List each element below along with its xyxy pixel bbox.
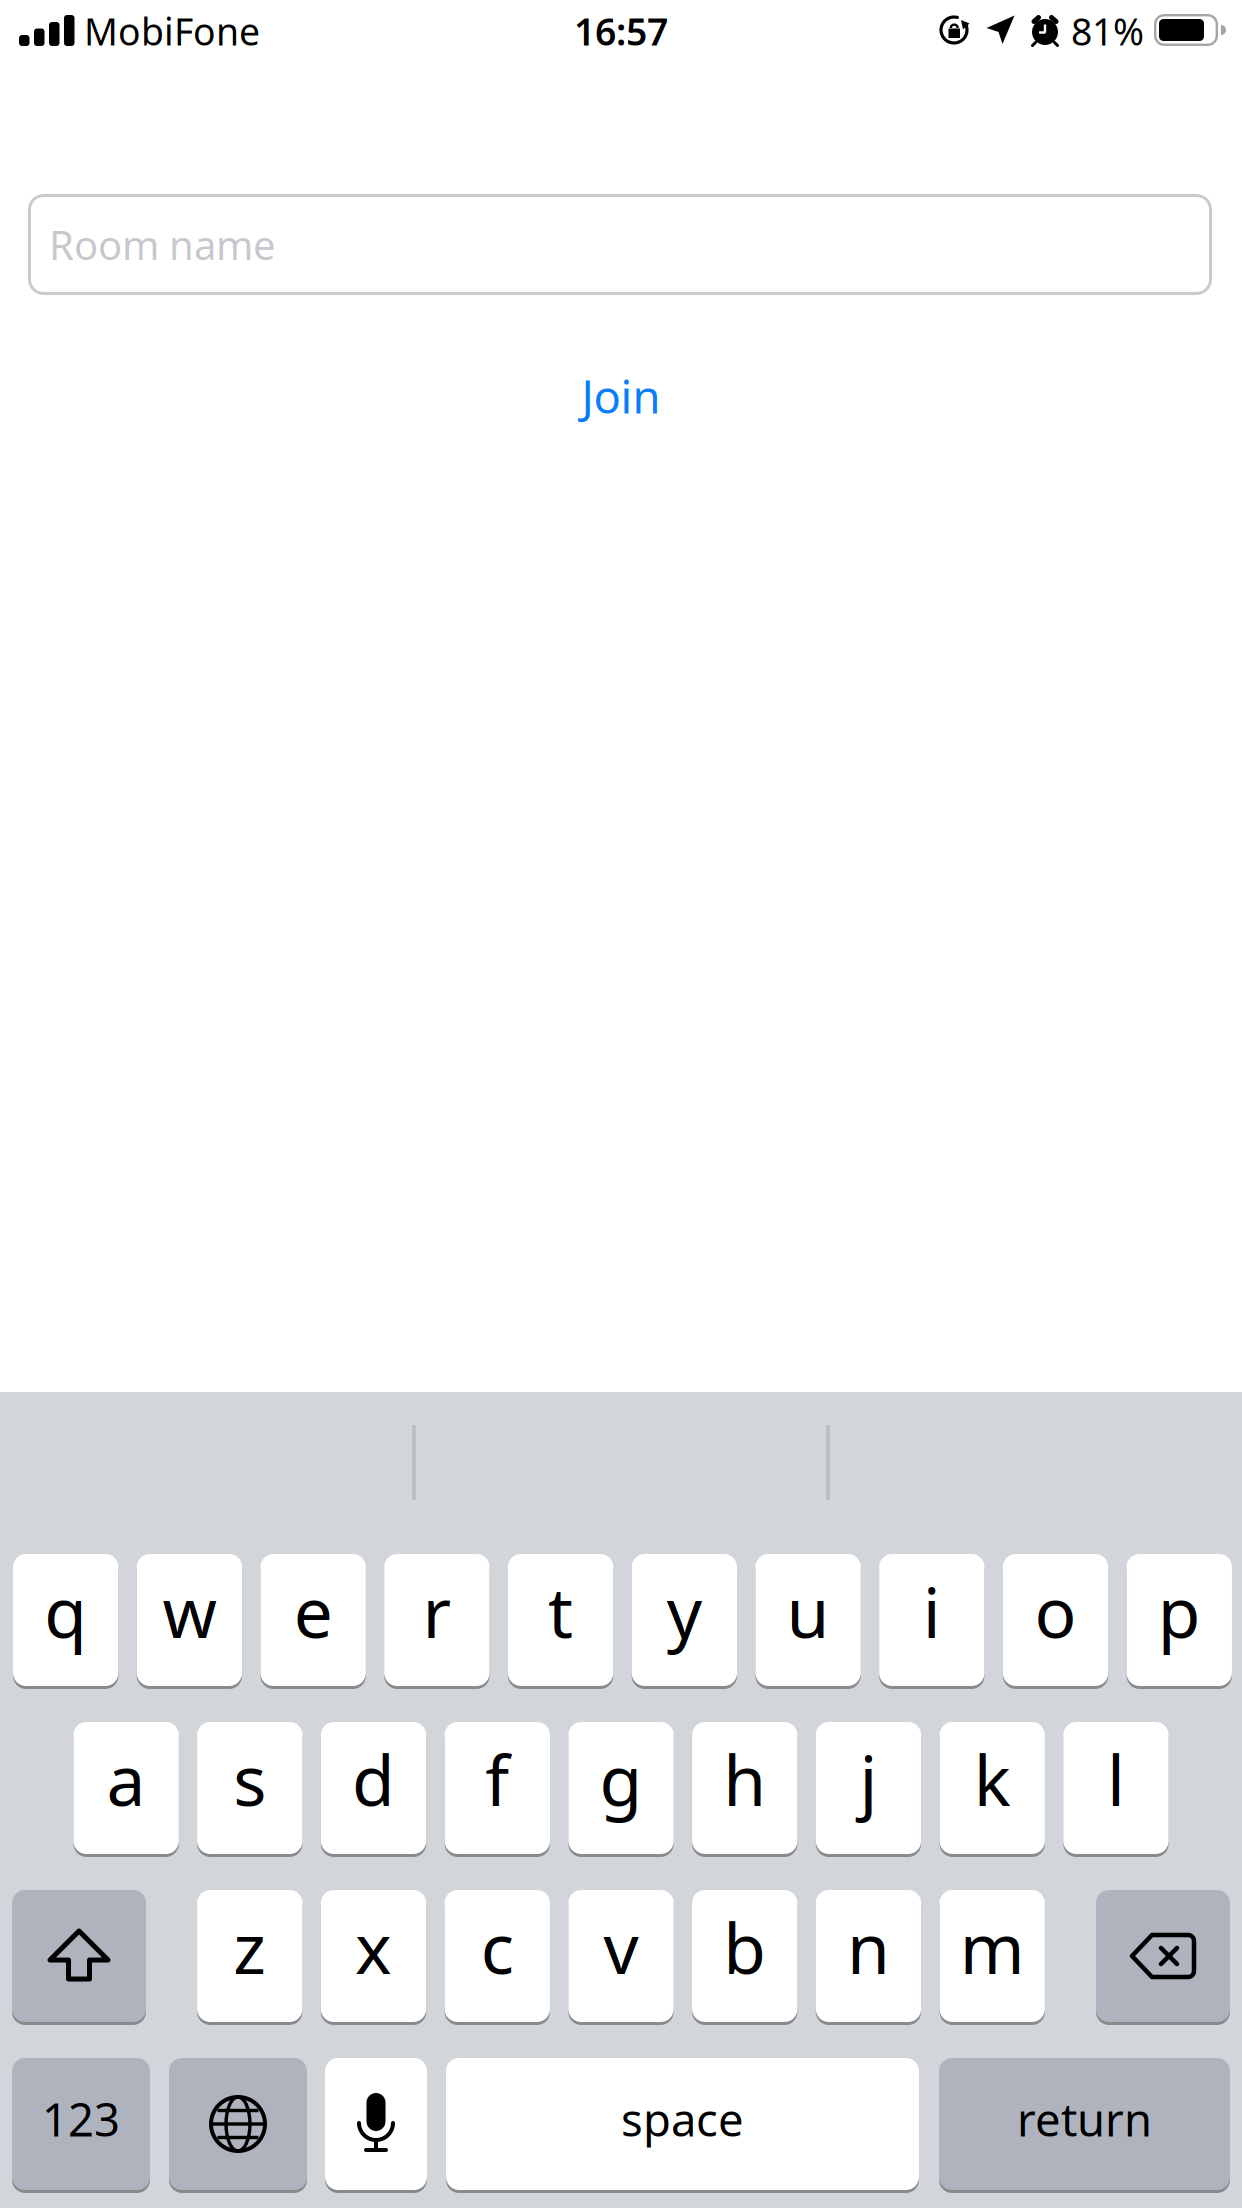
- staticText: MobiFone: [84, 6, 260, 56]
- button[interactable]: n: [816, 1890, 921, 2022]
- staticText: p: [1158, 1565, 1201, 1657]
- button[interactable]: o: [1003, 1554, 1108, 1686]
- staticText: q: [44, 1565, 87, 1657]
- button[interactable]: Next keyboard: [169, 2058, 307, 2190]
- staticText: a: [107, 1733, 146, 1825]
- button[interactable]: q: [13, 1554, 118, 1686]
- staticText: b: [723, 1901, 766, 1993]
- button[interactable]: m: [939, 1890, 1045, 2022]
- button[interactable]: return: [939, 2058, 1230, 2190]
- staticText: o: [1034, 1565, 1076, 1657]
- staticText: 81%: [1071, 6, 1144, 56]
- button[interactable]: t: [508, 1554, 613, 1686]
- staticText: k: [974, 1733, 1011, 1825]
- staticText: j: [859, 1733, 877, 1825]
- staticText: w: [162, 1565, 216, 1657]
- button[interactable]: y: [632, 1554, 737, 1686]
- button[interactable]: w: [137, 1554, 242, 1686]
- button[interactable]: e: [260, 1554, 366, 1686]
- staticText: v: [603, 1901, 638, 1993]
- button[interactable]: v: [568, 1890, 674, 2022]
- staticText: t: [548, 1565, 573, 1657]
- button[interactable]: f: [445, 1722, 550, 1854]
- staticText: r: [422, 1565, 451, 1657]
- button[interactable]: 123: [12, 2058, 150, 2190]
- staticText: c: [481, 1901, 514, 1993]
- button[interactable]: h: [692, 1722, 797, 1854]
- button[interactable]: a: [73, 1722, 179, 1854]
- staticText: e: [294, 1565, 333, 1657]
- staticText: n: [847, 1901, 890, 1993]
- button[interactable]: r: [384, 1554, 490, 1686]
- button[interactable]: Shift: [12, 1890, 146, 2022]
- staticText: g: [599, 1733, 642, 1825]
- staticText: s: [233, 1733, 266, 1825]
- button[interactable]: i: [879, 1554, 984, 1686]
- staticText: x: [355, 1901, 392, 1993]
- button[interactable]: space: [446, 2058, 919, 2190]
- staticText: i: [923, 1565, 941, 1657]
- staticText: 16:57: [574, 6, 668, 56]
- staticText: Join: [581, 366, 660, 426]
- staticText: u: [787, 1565, 830, 1657]
- staticText: l: [1107, 1733, 1125, 1825]
- button[interactable]: z: [197, 1890, 302, 2022]
- button[interactable]: d: [321, 1722, 426, 1854]
- button[interactable]: j: [816, 1722, 921, 1854]
- staticText: y: [667, 1565, 702, 1657]
- staticText: h: [723, 1733, 766, 1825]
- staticText: space: [621, 2089, 744, 2149]
- button[interactable]: l: [1063, 1722, 1169, 1854]
- staticText: m: [960, 1901, 1025, 1993]
- button[interactable]: k: [939, 1722, 1045, 1854]
- button[interactable]: x: [321, 1890, 426, 2022]
- button[interactable]: Delete: [1096, 1890, 1230, 2022]
- staticText: 123: [42, 2089, 120, 2149]
- staticText: f: [485, 1733, 509, 1825]
- button[interactable]: Dictate: [325, 2058, 427, 2190]
- button[interactable]: s: [197, 1722, 302, 1854]
- button[interactable]: u: [755, 1554, 861, 1686]
- staticText: return: [1017, 2089, 1152, 2149]
- button[interactable]: p: [1127, 1554, 1232, 1686]
- button[interactable]: b: [692, 1890, 797, 2022]
- staticText: d: [352, 1733, 395, 1825]
- button[interactable]: Join: [521, 361, 721, 431]
- button[interactable]: c: [445, 1890, 550, 2022]
- button[interactable]: g: [568, 1722, 674, 1854]
- staticText: z: [233, 1901, 266, 1993]
- button[interactable]: Room name: [28, 194, 1212, 295]
- staticText: Room name: [49, 218, 276, 271]
